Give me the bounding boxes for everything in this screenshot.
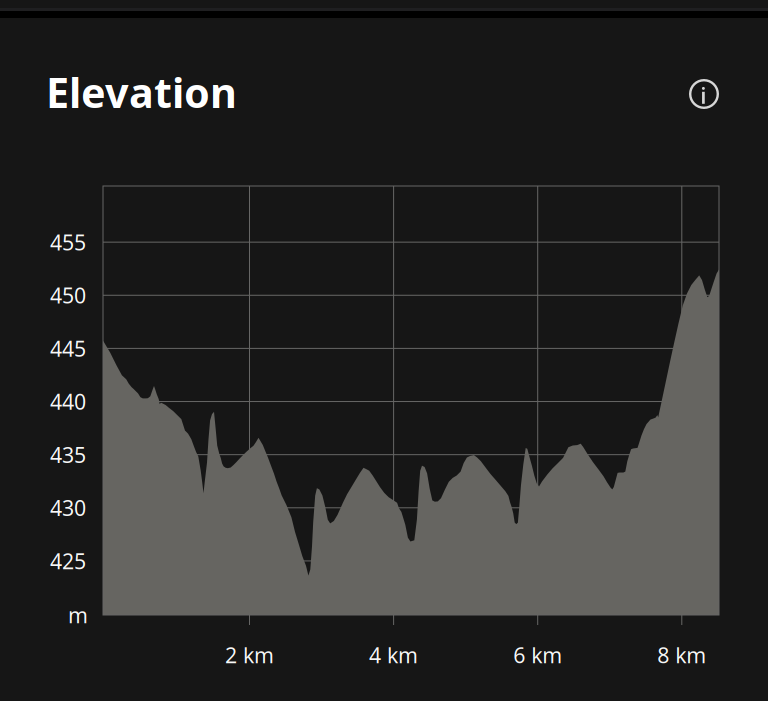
staticText: 435 <box>50 440 86 469</box>
staticText: Elevation <box>46 65 237 119</box>
staticText: 425 <box>50 547 86 575</box>
staticText: 430 <box>50 494 86 522</box>
staticText: 4 km <box>369 641 418 669</box>
staticText: 450 <box>50 281 86 309</box>
staticText: 455 <box>50 228 86 256</box>
staticText: 445 <box>50 334 86 362</box>
staticText: 6 km <box>513 641 562 669</box>
staticText: 440 <box>50 387 86 416</box>
staticText: 8 km <box>657 641 706 669</box>
button[interactable]: About Elevation <box>682 72 726 116</box>
staticText: m <box>68 601 88 629</box>
staticText: 2 km <box>225 641 274 669</box>
